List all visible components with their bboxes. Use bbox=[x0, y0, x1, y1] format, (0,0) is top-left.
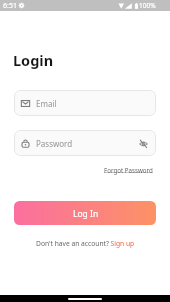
staticText: 100% bbox=[139, 1, 156, 10]
other: Settings bbox=[19, 3, 24, 8]
staticText: Login bbox=[13, 50, 54, 70]
button[interactable]: Show password bbox=[139, 139, 148, 148]
button[interactable]: Email bbox=[14, 90, 156, 116]
staticText: Don't have an account? Sign up bbox=[36, 239, 135, 248]
button[interactable]: Forgot Password bbox=[104, 166, 153, 174]
staticText: Log In bbox=[73, 208, 99, 220]
button[interactable]: Password bbox=[14, 130, 156, 156]
staticText: 6:51 bbox=[3, 1, 17, 11]
staticText: Forgot Password bbox=[104, 166, 153, 174]
button[interactable]: Don't have an account? Sign up bbox=[36, 239, 135, 248]
staticText: Email bbox=[36, 98, 57, 109]
staticText: Password bbox=[36, 138, 73, 149]
button[interactable]: Log In bbox=[14, 201, 156, 225]
